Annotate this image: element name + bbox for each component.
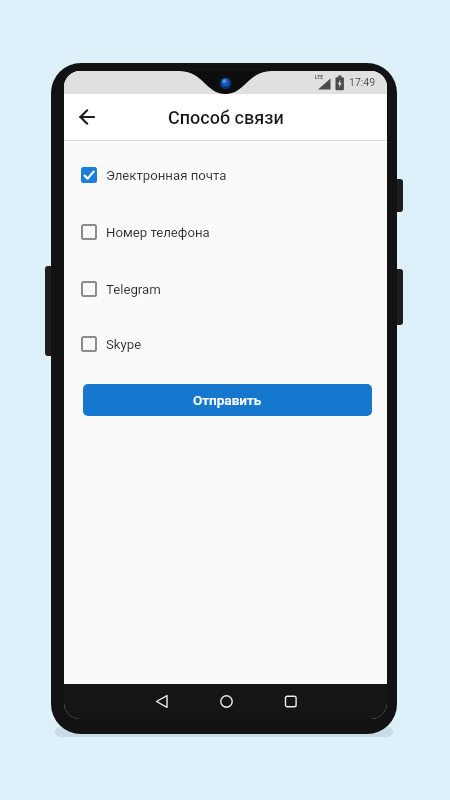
button[interactable] (206, 684, 246, 719)
staticText: Telegram (106, 282, 161, 297)
staticText: Отправить (193, 392, 262, 408)
button[interactable]: Отправить (83, 384, 372, 416)
staticText: LTE (315, 74, 324, 80)
staticText: 17:49 (349, 76, 376, 88)
staticText: Способ связи (168, 107, 284, 128)
staticText: Skype (106, 337, 142, 352)
button[interactable] (64, 94, 110, 140)
button[interactable]: Skype (64, 324, 387, 364)
button[interactable]: Номер телефона (64, 212, 387, 252)
button[interactable]: Telegram (64, 269, 387, 309)
button[interactable]: Электронная почта (64, 155, 387, 195)
staticText: Электронная почта (106, 168, 227, 183)
staticText: Номер телефона (106, 225, 210, 240)
button[interactable] (142, 684, 182, 719)
button[interactable] (270, 684, 310, 719)
